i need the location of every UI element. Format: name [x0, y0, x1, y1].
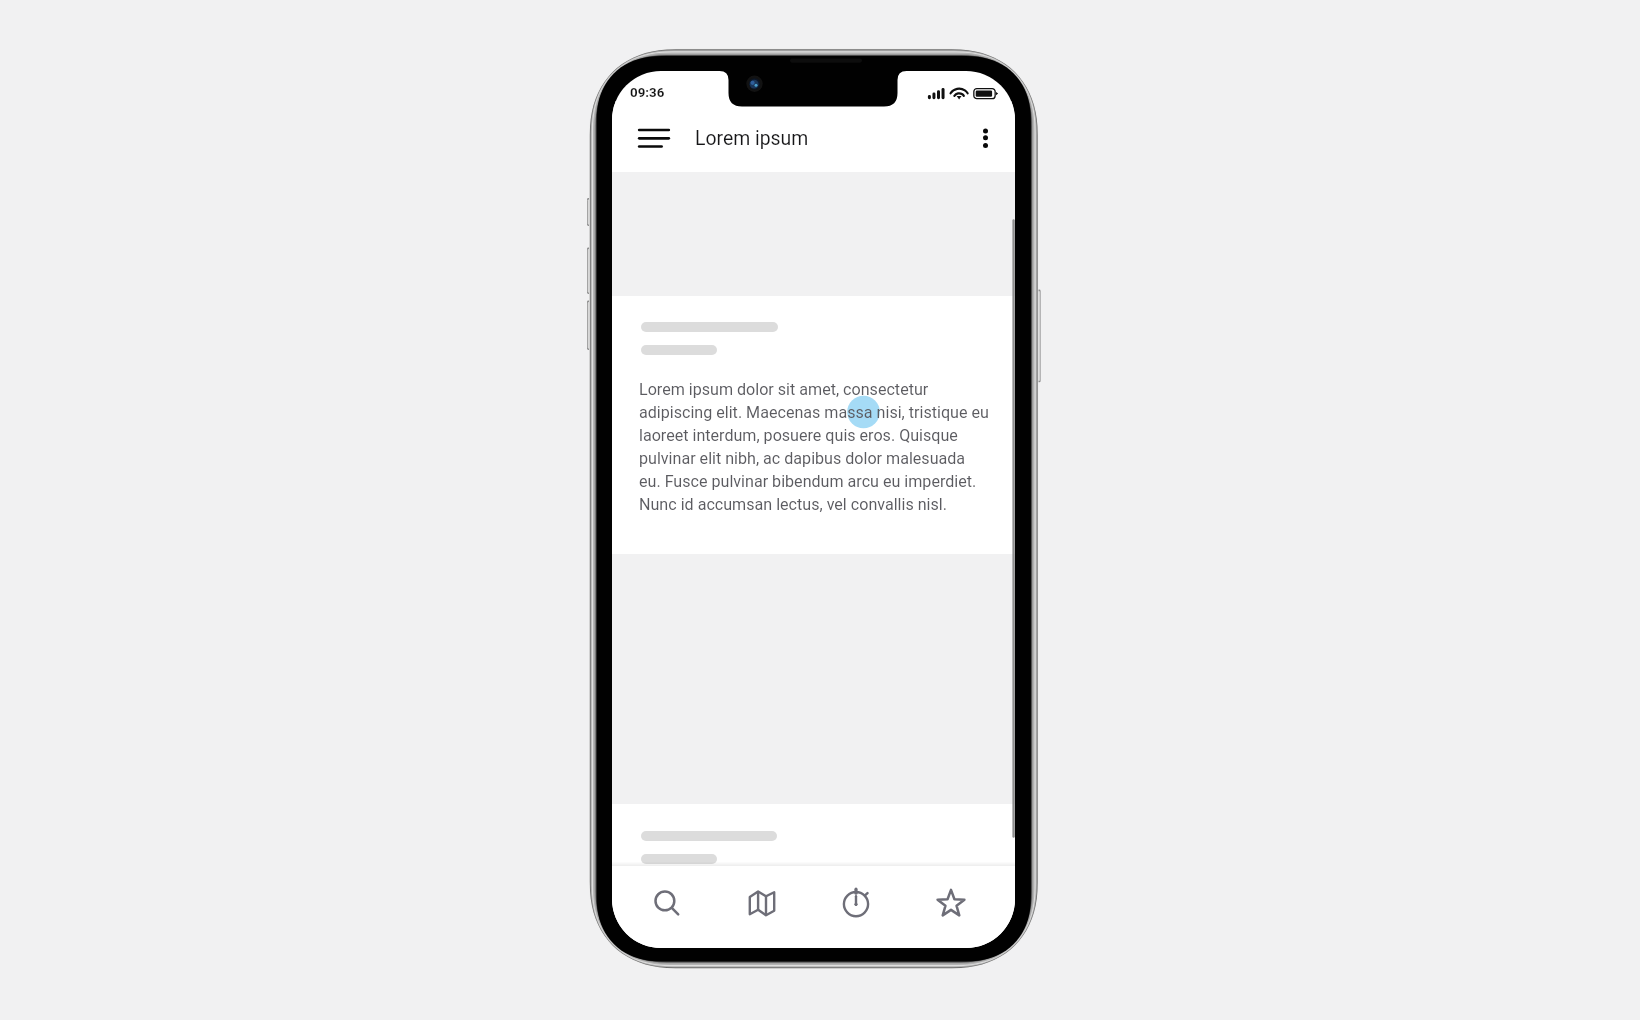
button[interactable]: Favorites	[918, 873, 984, 933]
staticText: Lorem ipsum dolor sit amet, consectetur …	[639, 380, 989, 514]
button[interactable]: More options	[972, 115, 998, 159]
button[interactable]: Timer	[823, 873, 889, 933]
staticText: 09:36	[630, 85, 665, 101]
button[interactable]: Search	[634, 873, 700, 933]
staticText: Lorem ipsum	[695, 127, 809, 150]
button[interactable]: Map	[729, 873, 795, 933]
button[interactable]: Open navigation menu	[630, 115, 670, 159]
